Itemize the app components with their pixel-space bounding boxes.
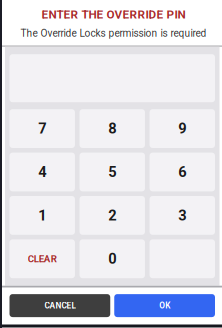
staticText: 7 [38,120,46,137]
staticText: ENTER THE OVERRIDE PIN [41,8,185,21]
staticText: 1 [38,207,46,224]
button[interactable]: 4 [9,153,75,191]
staticText: 9 [178,120,186,137]
staticText: OK [159,301,170,310]
staticText: 0 [108,250,116,267]
button[interactable]: 1 [9,196,75,235]
staticText: 2 [108,207,116,224]
staticText: 6 [178,163,186,181]
staticText: The Override Locks permission is require… [20,27,206,39]
staticText: 8 [108,120,116,137]
staticText: CLEAR [28,253,57,264]
button[interactable]: OK [114,294,215,317]
button[interactable]: 6 [150,153,215,191]
button[interactable]: 8 [79,109,145,148]
staticText: 4 [38,163,46,181]
button[interactable]: 7 [9,109,75,148]
button[interactable]: 5 [79,153,145,191]
button[interactable]: 2 [79,196,145,235]
button[interactable]: 9 [150,109,215,148]
staticText: 5 [108,163,116,181]
button[interactable]: 0 [79,239,145,278]
staticText: CANCEL [44,301,75,310]
button[interactable]: CANCEL [9,294,110,317]
staticText: 3 [178,207,186,224]
button[interactable]: 3 [150,196,215,235]
button[interactable]: CLEAR [9,239,75,278]
